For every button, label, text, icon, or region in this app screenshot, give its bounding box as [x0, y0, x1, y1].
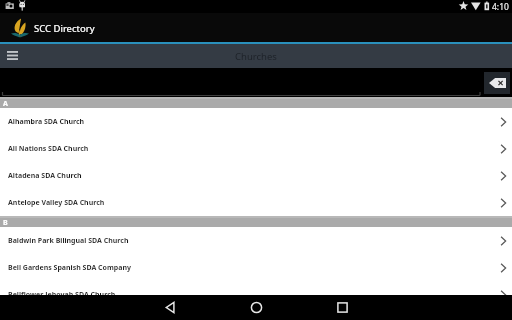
staticText: SCC Directory: [34, 22, 95, 35]
button[interactable]: Antelope Valley SDA Church: [0, 189, 512, 216]
button[interactable]: Back: [158, 295, 183, 320]
button[interactable]: Recent apps: [330, 295, 355, 320]
staticText: B: [3, 218, 8, 227]
button[interactable]: Open navigation drawer: [0, 44, 24, 68]
button[interactable]: Altadena SDA Church: [0, 162, 512, 189]
button[interactable]: All Nations SDA Church: [0, 135, 512, 162]
button[interactable]: Home: [244, 295, 269, 320]
staticText: 4:10: [492, 1, 509, 13]
staticText: Antelope Valley SDA Church: [8, 198, 105, 208]
staticText: Baldwin Park Bilingual SDA Church: [8, 236, 129, 246]
staticText: Alhambra SDA Church: [8, 117, 85, 127]
button[interactable]: Bellflower Jehovah SDA Church: [0, 281, 512, 308]
staticText: Altadena SDA Church: [8, 171, 82, 181]
button[interactable]: Baldwin Park Bilingual SDA Church: [0, 227, 512, 254]
staticText: Bell Gardens Spanish SDA Company: [8, 263, 131, 273]
staticText: A: [3, 99, 8, 108]
staticText: All Nations SDA Church: [8, 144, 89, 154]
button[interactable]: Clear search text: [484, 72, 510, 94]
staticText: Bellflower Jehovah SDA Church: [8, 290, 116, 300]
staticText: Churches: [235, 50, 277, 63]
button[interactable]: Alhambra SDA Church: [0, 108, 512, 135]
button[interactable]: Bell Gardens Spanish SDA Company: [0, 254, 512, 281]
